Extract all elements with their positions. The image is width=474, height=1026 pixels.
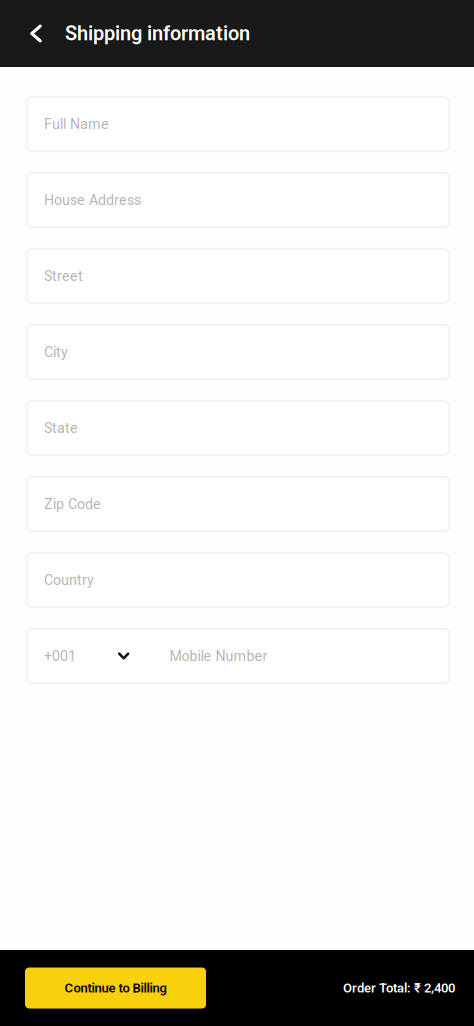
button[interactable]: Street	[27, 249, 449, 303]
staticText: Street	[44, 268, 83, 284]
staticText: Shipping information	[65, 22, 250, 45]
staticText: City	[44, 344, 68, 360]
staticText: Mobile Number	[169, 648, 267, 664]
button[interactable]: Country	[27, 553, 449, 607]
staticText: House Address	[44, 192, 141, 208]
button[interactable]: Continue to Billing	[25, 967, 206, 1008]
staticText: Country	[44, 572, 94, 588]
staticText: Full Name	[44, 116, 109, 132]
button[interactable]: Back	[19, 11, 53, 55]
button[interactable]: City	[27, 325, 449, 379]
button[interactable]: State	[27, 401, 449, 455]
button[interactable]: House Address	[27, 173, 449, 227]
button[interactable]: +001	[27, 629, 449, 683]
staticText: +001	[44, 648, 76, 664]
button[interactable]: Full Name	[27, 97, 449, 151]
staticText: Zip Code	[44, 496, 101, 512]
staticText: Order Total: ₹ 2,400	[343, 980, 455, 996]
staticText: State	[44, 420, 78, 436]
button[interactable]: Zip Code	[27, 477, 449, 531]
staticText: Continue to Billing	[64, 980, 166, 996]
